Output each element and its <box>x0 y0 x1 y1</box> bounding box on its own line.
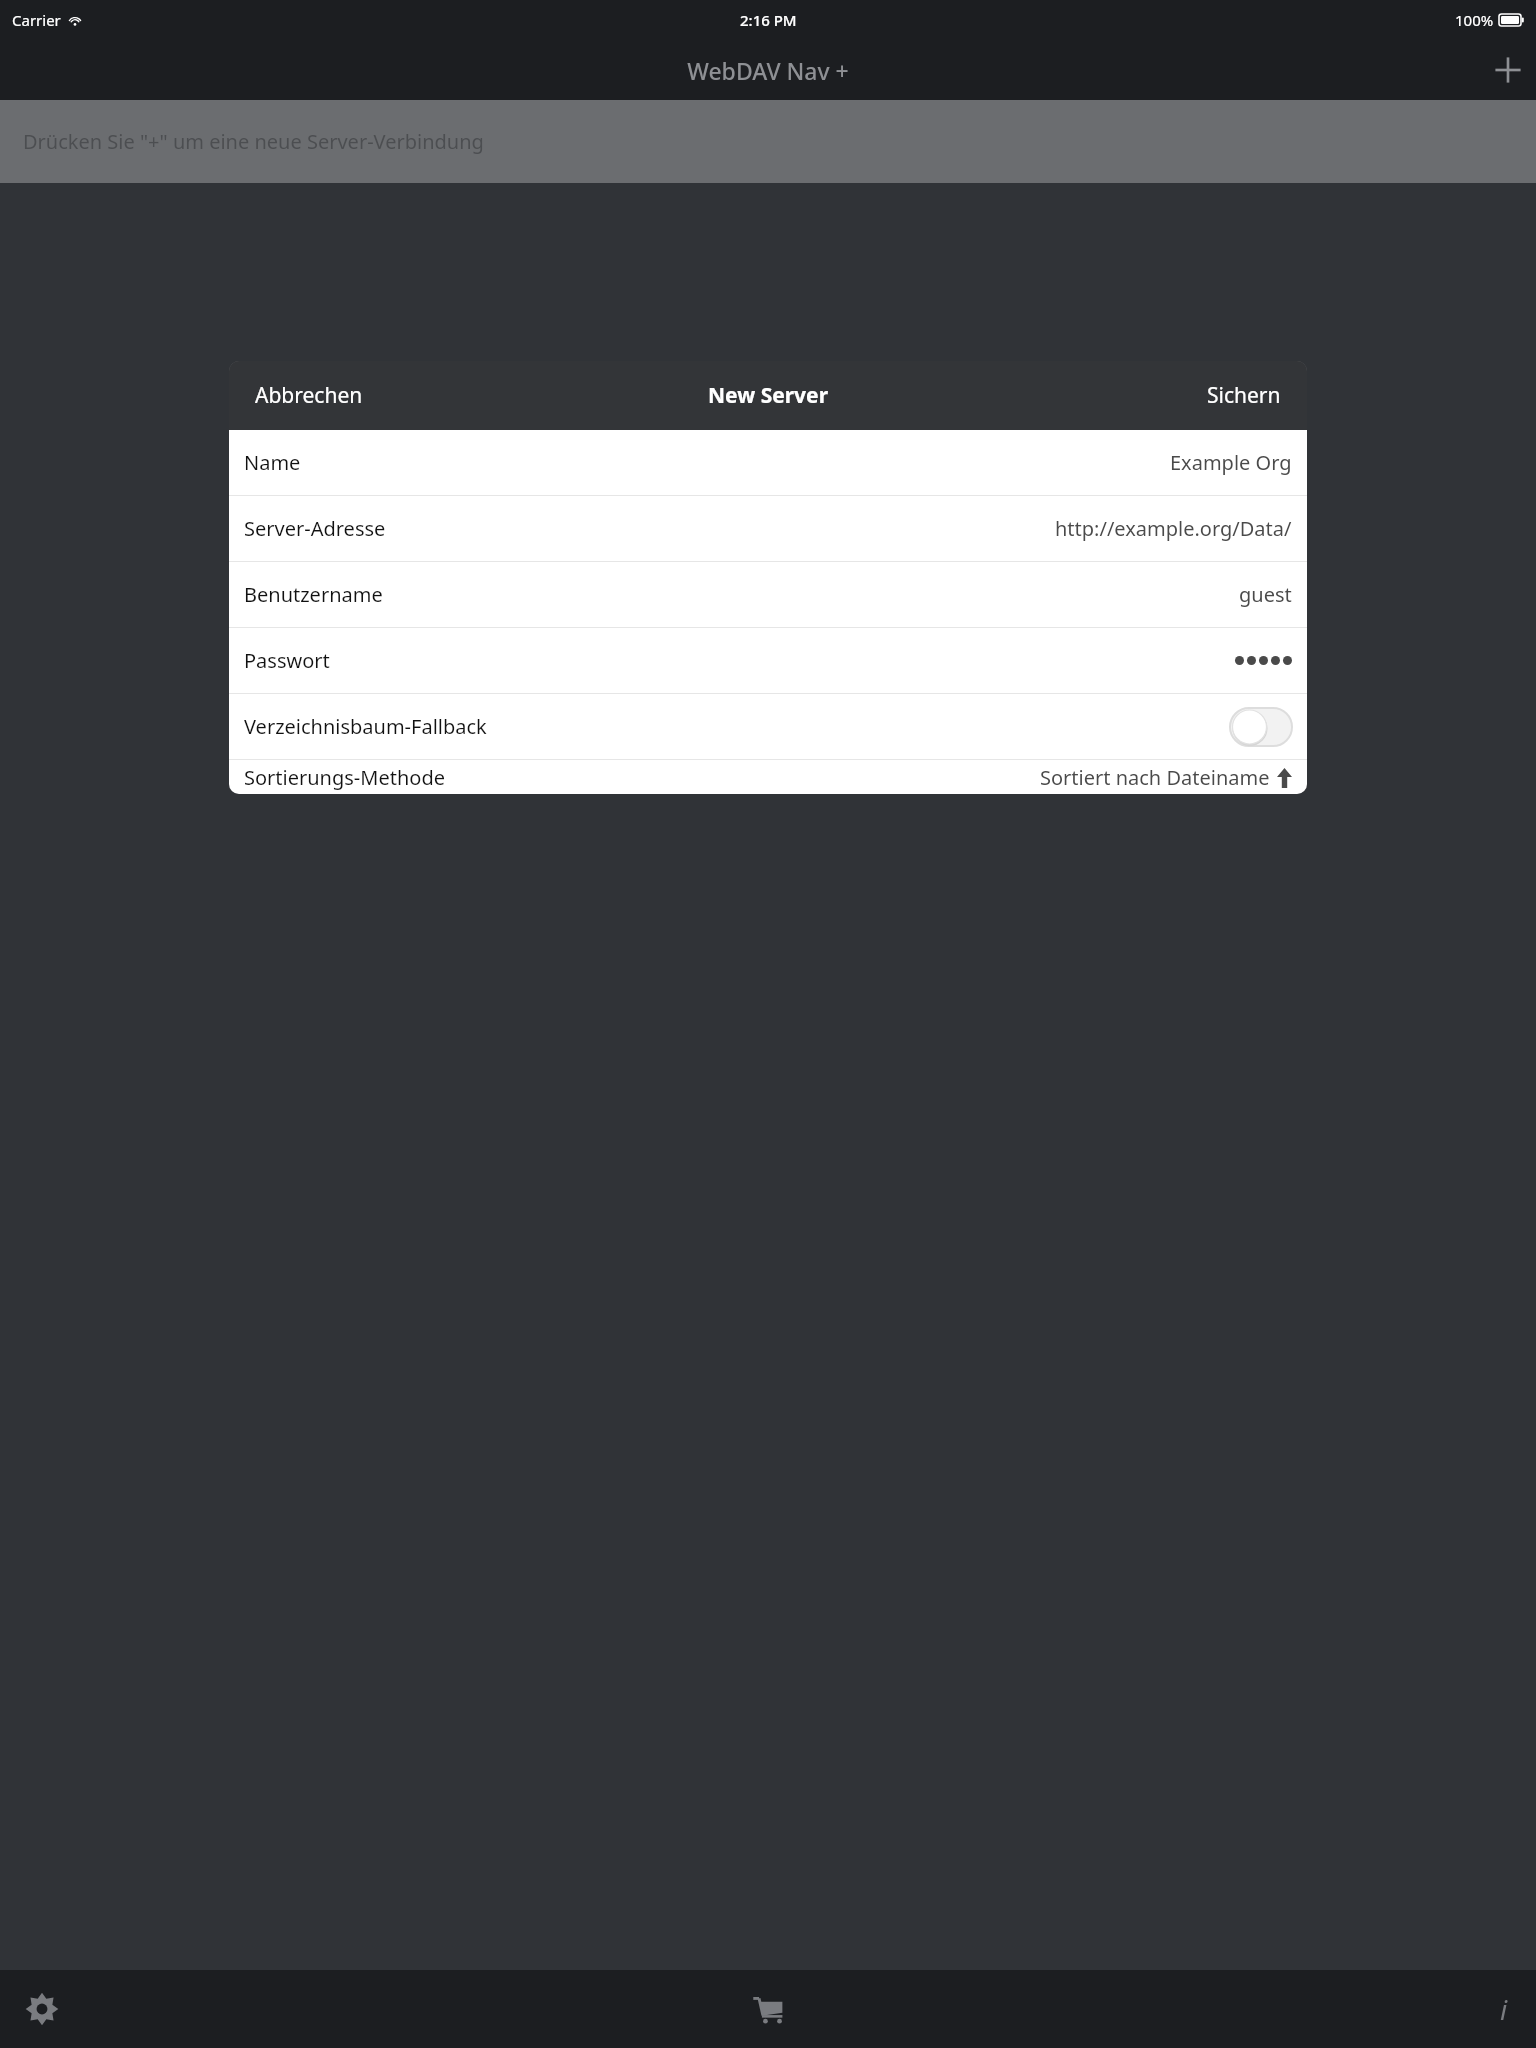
staticText: Sichern <box>1207 381 1281 410</box>
staticText: Drücken Sie "+" um eine neue Server-Verb… <box>23 128 484 155</box>
staticText: 2:16 PM <box>740 10 797 30</box>
staticText: i <box>1500 1990 1508 2028</box>
button[interactable]: Benutzername <box>229 562 1307 627</box>
staticText: Sortierungs-Methode <box>244 764 445 791</box>
staticText: Passwort <box>244 647 330 674</box>
staticText: Example Org <box>1170 449 1292 476</box>
button[interactable]: Abbrechen <box>229 361 389 430</box>
staticText: Abbrechen <box>255 381 363 410</box>
staticText: Carrier <box>12 10 61 30</box>
button[interactable]: Sichern <box>1181 361 1307 430</box>
button[interactable]: Server-Adresse <box>229 496 1307 561</box>
staticText: Server-Adresse <box>244 515 386 542</box>
staticText: WebDAV Nav + <box>687 55 849 86</box>
staticText: http://example.org/Data/ <box>1055 515 1292 542</box>
button[interactable]: Settings <box>0 1970 512 2048</box>
button[interactable]: Verzeichnisbaum-Fallback <box>229 694 1307 759</box>
staticText: New Server <box>708 381 829 410</box>
staticText: Sortiert nach Dateiname <box>1040 764 1270 791</box>
staticText: Name <box>244 449 301 476</box>
button[interactable]: Passwort <box>229 628 1307 693</box>
staticText: Benutzername <box>244 581 383 608</box>
staticText: guest <box>1239 581 1292 608</box>
button[interactable]: Sortierungs-Methode <box>229 760 1307 794</box>
button[interactable]: Add server <box>1480 42 1536 98</box>
button[interactable]: Name <box>229 430 1307 495</box>
staticText: Verzeichnisbaum-Fallback <box>244 713 487 740</box>
button[interactable]: Store <box>512 1970 1024 2048</box>
button[interactable]: Verzeichnisbaum-Fallback toggle <box>1230 708 1292 746</box>
staticText: 100% <box>1455 10 1494 30</box>
